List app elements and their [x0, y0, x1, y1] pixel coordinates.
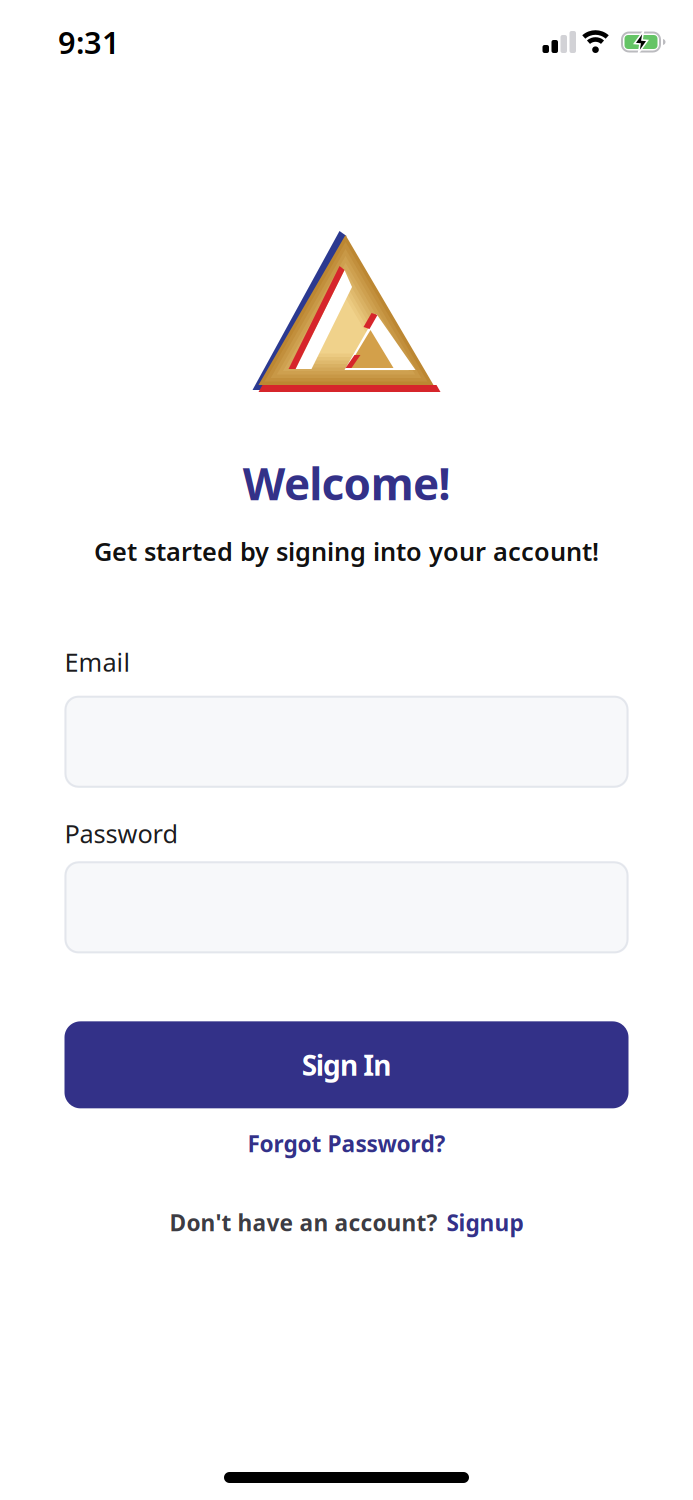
staticText: Password — [64, 817, 178, 850]
staticText: Get started by signing into your account… — [94, 534, 599, 568]
staticText: Sign In — [302, 1046, 391, 1083]
staticText: Don't have an account? — [169, 1207, 437, 1238]
button[interactable]: Forgot Password? — [247, 1128, 445, 1158]
button[interactable]: Signup — [446, 1207, 523, 1238]
staticText: Email — [64, 645, 130, 679]
staticText: 9:31 — [58, 22, 120, 62]
button[interactable]: Sign In — [64, 1021, 628, 1108]
staticText: Signup — [446, 1207, 523, 1238]
staticText: Welcome! — [243, 454, 450, 512]
button[interactable]: Password — [64, 861, 628, 953]
button[interactable]: Email — [64, 696, 628, 788]
staticText: Forgot Password? — [247, 1128, 445, 1158]
